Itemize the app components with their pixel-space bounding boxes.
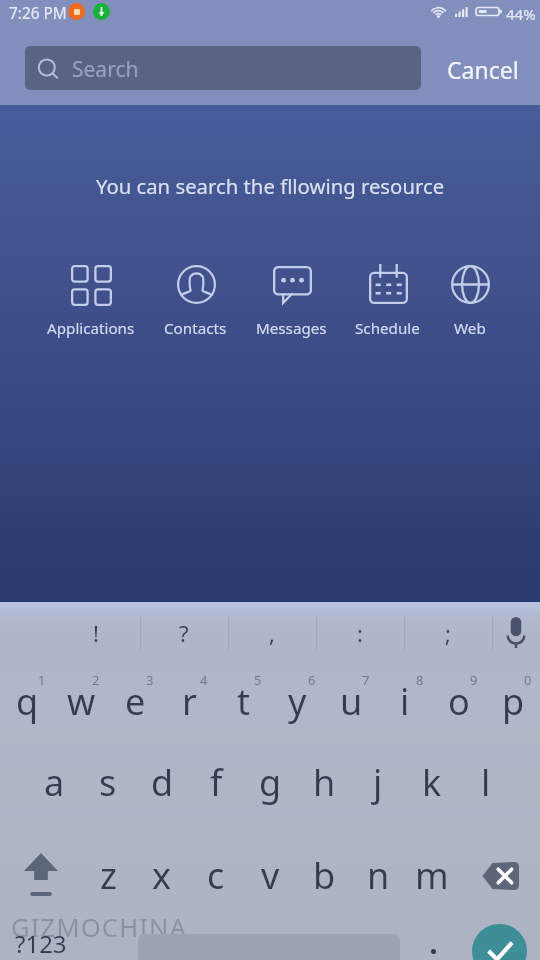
- staticText: ?123: [15, 927, 67, 960]
- button[interactable]: Search: [25, 46, 421, 90]
- staticText: q: [16, 677, 39, 726]
- button[interactable]: Contacts: [164, 263, 227, 339]
- staticText: l: [481, 758, 491, 807]
- button[interactable]: q: [0, 665, 54, 739]
- button[interactable]: g: [243, 746, 297, 820]
- button[interactable]: Schedule: [355, 263, 420, 339]
- staticText: o: [448, 677, 470, 726]
- button[interactable]: ?123: [0, 912, 84, 960]
- staticText: 5: [254, 671, 262, 689]
- staticText: 8: [416, 671, 424, 689]
- button[interactable]: i: [378, 665, 432, 739]
- staticText: i: [400, 677, 410, 726]
- button[interactable]: Enter: [472, 924, 527, 960]
- button[interactable]: Applications: [47, 263, 135, 339]
- staticText: r: [182, 677, 197, 726]
- button[interactable]: :: [316, 602, 404, 663]
- button[interactable]: d: [135, 746, 189, 820]
- button[interactable]: u: [324, 665, 378, 739]
- button[interactable]: b: [297, 839, 351, 913]
- button[interactable]: !: [52, 602, 140, 663]
- staticText: 1: [38, 671, 46, 689]
- staticText: b: [313, 851, 336, 900]
- staticText: Web: [454, 318, 486, 339]
- staticText: v: [261, 851, 280, 900]
- staticText: n: [367, 851, 390, 900]
- button[interactable]: f: [189, 746, 243, 820]
- staticText: z: [100, 851, 117, 900]
- button[interactable]: t: [216, 665, 270, 739]
- staticText: t: [237, 677, 250, 726]
- button[interactable]: o: [432, 665, 486, 739]
- staticText: ;: [445, 618, 451, 648]
- staticText: 0: [524, 671, 532, 689]
- button[interactable]: e: [108, 665, 162, 739]
- button[interactable]: r: [162, 665, 216, 739]
- button[interactable]: Voice input: [492, 602, 540, 663]
- button[interactable]: h: [297, 746, 351, 820]
- staticText: !: [93, 618, 99, 648]
- staticText: Schedule: [355, 318, 420, 339]
- staticText: 4: [200, 671, 208, 689]
- staticText: c: [207, 851, 225, 900]
- staticText: 3: [146, 671, 154, 689]
- staticText: Search: [72, 55, 139, 84]
- staticText: s: [99, 758, 117, 807]
- staticText: x: [152, 851, 172, 900]
- button[interactable]: ?: [140, 602, 228, 663]
- staticText: a: [44, 758, 65, 807]
- button[interactable]: z: [81, 839, 135, 913]
- staticText: m: [415, 851, 449, 900]
- button[interactable]: Period: [403, 912, 463, 960]
- staticText: j: [373, 758, 383, 807]
- staticText: ,: [269, 618, 275, 648]
- button[interactable]: n: [351, 839, 405, 913]
- staticText: 9: [470, 671, 478, 689]
- button[interactable]: c: [189, 839, 243, 913]
- staticText: 7: [362, 671, 370, 689]
- staticText: Applications: [47, 318, 135, 339]
- staticText: :: [357, 618, 363, 648]
- staticText: 2: [92, 671, 100, 689]
- button[interactable]: k: [405, 746, 459, 820]
- button[interactable]: j: [351, 746, 405, 820]
- button[interactable]: w: [54, 665, 108, 739]
- staticText: Contacts: [164, 318, 227, 339]
- button[interactable]: p: [486, 665, 540, 739]
- staticText: GIZMOCHINA: [11, 910, 188, 945]
- staticText: y: [288, 677, 307, 726]
- staticText: w: [67, 677, 96, 726]
- button[interactable]: Backspace: [459, 839, 540, 913]
- staticText: 6: [308, 671, 316, 689]
- button[interactable]: ;: [404, 602, 492, 663]
- staticText: d: [151, 758, 174, 807]
- button[interactable]: a: [27, 746, 81, 820]
- button[interactable]: Cancel: [441, 42, 525, 93]
- button[interactable]: v: [243, 839, 297, 913]
- button[interactable]: Shift: [0, 839, 81, 913]
- staticText: ?: [179, 618, 189, 648]
- staticText: p: [502, 677, 525, 726]
- staticText: f: [210, 758, 223, 807]
- staticText: u: [340, 677, 363, 726]
- button[interactable]: l: [459, 746, 513, 820]
- button[interactable]: Web: [449, 263, 491, 339]
- staticText: k: [422, 758, 442, 807]
- staticText: e: [125, 677, 146, 726]
- button[interactable]: Messages: [256, 263, 327, 339]
- staticText: You can search the fllowing resource: [0, 172, 540, 200]
- staticText: 44%: [506, 4, 536, 24]
- staticText: Messages: [256, 318, 327, 339]
- button[interactable]: ,: [228, 602, 316, 663]
- button[interactable]: x: [135, 839, 189, 913]
- staticText: Cancel: [447, 54, 519, 85]
- button[interactable]: y: [270, 665, 324, 739]
- button[interactable]: m: [405, 839, 459, 913]
- button[interactable]: s: [81, 746, 135, 820]
- staticText: g: [259, 758, 282, 807]
- staticText: h: [313, 758, 336, 807]
- staticText: 7:26 PM: [9, 3, 67, 24]
